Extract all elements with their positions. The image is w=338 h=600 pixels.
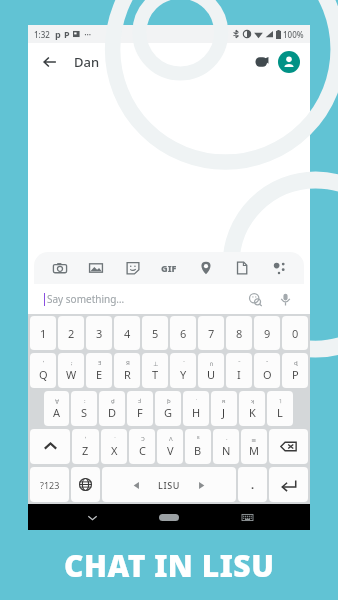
button[interactable]: Camera <box>49 257 71 279</box>
staticText: U <box>207 367 216 382</box>
button[interactable]: Video call <box>250 50 274 74</box>
button[interactable]: ƥ <box>155 391 181 426</box>
button[interactable]: GIF <box>158 257 180 279</box>
button[interactable]: 6 <box>170 316 196 350</box>
button[interactable]: Back <box>38 50 62 74</box>
button[interactable]: 8 <box>226 316 252 350</box>
staticText: 9 <box>264 326 271 341</box>
staticText: ≡ <box>251 436 257 443</box>
staticText: C <box>139 443 146 458</box>
staticText: J <box>222 405 226 420</box>
staticText: ⊥ <box>153 360 159 367</box>
button[interactable]: · <box>213 429 239 464</box>
staticText: . <box>251 477 255 492</box>
button[interactable]: Hide keyboard <box>79 504 105 530</box>
staticText: H <box>192 405 201 420</box>
staticText: I <box>237 367 241 382</box>
button[interactable]: Enter <box>269 467 308 502</box>
button[interactable]: Ɔ <box>129 429 155 464</box>
button[interactable]: Gallery <box>85 257 107 279</box>
button[interactable]: Home <box>155 504 183 530</box>
button[interactable]: ʀ <box>211 391 237 426</box>
staticText: ˥ <box>279 397 282 405</box>
staticText: P <box>64 28 70 40</box>
button[interactable]: ˥ <box>267 391 293 426</box>
button[interactable]: Symbols <box>30 467 69 502</box>
button[interactable]: 0 <box>282 316 308 350</box>
button[interactable]: More <box>268 257 290 279</box>
button[interactable]: ʞ <box>239 391 265 426</box>
staticText: O <box>263 367 272 382</box>
button[interactable]: LISU <box>102 467 236 502</box>
staticText: 8 <box>236 326 243 341</box>
button[interactable]: Search emoji <box>246 290 264 308</box>
button[interactable]: ; <box>58 353 84 388</box>
staticText: A <box>53 405 61 420</box>
button[interactable]: Location <box>195 257 217 279</box>
button[interactable]: 9 <box>254 316 280 350</box>
staticText: K <box>249 405 256 420</box>
staticText: 6 <box>180 326 187 341</box>
staticText: T <box>152 367 159 382</box>
button[interactable]: ̇ <box>101 429 127 464</box>
button[interactable]: : <box>71 391 97 426</box>
staticText: Z <box>82 443 89 458</box>
button[interactable]: Change language <box>71 467 100 502</box>
button[interactable]: ḏ <box>99 391 125 426</box>
button[interactable]: Ǝ <box>86 353 112 388</box>
staticText: S <box>81 405 88 420</box>
button[interactable]: Period <box>238 467 267 502</box>
button[interactable]: Voice input <box>276 290 294 308</box>
button[interactable]: ˙ <box>183 391 209 426</box>
button[interactable]: ˈ <box>72 429 99 464</box>
staticText: ᴮ <box>197 435 200 443</box>
button[interactable]: ≡ <box>241 429 267 464</box>
button[interactable]: ⊥ <box>142 353 168 388</box>
staticText: E <box>96 367 103 382</box>
staticText: ∩ <box>209 360 214 367</box>
button[interactable]: ʼ <box>30 353 56 388</box>
staticText: ˉ <box>266 359 269 367</box>
staticText: 2 <box>68 326 75 341</box>
button[interactable]: ˜ <box>226 353 252 388</box>
button[interactable]: Ⅎ <box>127 391 153 426</box>
staticText: X <box>111 443 118 458</box>
button[interactable]: Backspace <box>269 429 308 464</box>
staticText: B <box>194 443 202 458</box>
staticText: Y <box>180 367 187 382</box>
staticText: GIF <box>161 262 177 274</box>
button[interactable]: 5 <box>142 316 168 350</box>
staticText: LISU <box>158 479 180 491</box>
staticText: W <box>66 367 77 382</box>
staticText: ˈ <box>85 435 86 443</box>
button[interactable]: Say something… <box>44 284 294 314</box>
button[interactable]: 2 <box>58 316 84 350</box>
button[interactable]: Profile <box>278 51 300 73</box>
button[interactable]: File <box>231 257 253 279</box>
staticText: Λ <box>169 435 173 443</box>
button[interactable]: 7 <box>198 316 224 350</box>
button[interactable]: 4 <box>114 316 140 350</box>
button[interactable]: 3 <box>86 316 112 350</box>
button[interactable]: ɖ <box>282 353 308 388</box>
button[interactable]: ᴮ <box>185 429 211 464</box>
staticText: ; <box>71 359 73 367</box>
button[interactable]: ̈ <box>170 353 196 388</box>
staticText: Ɔ <box>141 435 145 443</box>
staticText: · <box>226 435 228 443</box>
button[interactable]: Я <box>114 353 140 388</box>
staticText: N <box>222 443 231 458</box>
staticText: Say something… <box>47 292 125 306</box>
button[interactable]: ∀ <box>44 391 69 426</box>
button[interactable]: Switch keyboard <box>234 504 260 530</box>
staticText: ḏ <box>111 397 115 405</box>
staticText: Q <box>39 367 48 382</box>
button[interactable]: ∩ <box>198 353 224 388</box>
button[interactable]: Λ <box>157 429 183 464</box>
staticText: 4 <box>124 326 131 341</box>
staticText: Я <box>126 359 130 367</box>
button[interactable]: Stickers <box>122 257 144 279</box>
button[interactable]: ˉ <box>254 353 280 388</box>
button[interactable]: 1 <box>30 316 56 350</box>
button[interactable]: Shift <box>30 429 70 464</box>
